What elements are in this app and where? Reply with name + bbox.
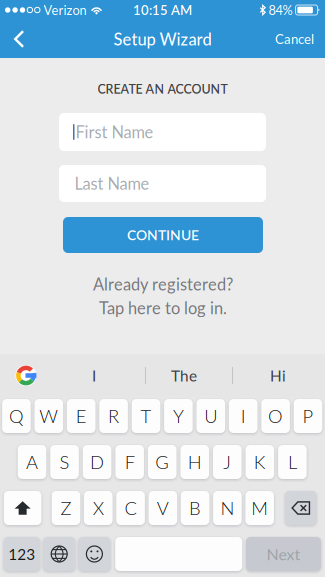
staticText: J: [223, 451, 231, 473]
button[interactable]: Q: [2, 399, 31, 433]
staticText: 10:15 AM: [133, 2, 192, 18]
button[interactable]: M: [245, 491, 274, 525]
button[interactable]: I: [54, 354, 134, 397]
staticText: I: [92, 366, 96, 385]
button[interactable]: W: [34, 399, 63, 433]
button[interactable]: CONTINUE: [63, 217, 263, 253]
button[interactable]: T: [132, 399, 160, 433]
staticText: V: [157, 497, 169, 519]
staticText: The: [171, 366, 197, 385]
staticText: Y: [173, 405, 184, 427]
button[interactable]: V: [148, 491, 177, 525]
button[interactable]: Emoji: [78, 537, 110, 571]
staticText: CONTINUE: [127, 227, 199, 243]
button[interactable]: F: [115, 445, 144, 479]
button[interactable]: S: [50, 445, 79, 479]
button[interactable]: A: [18, 445, 46, 479]
staticText: Hi: [270, 366, 286, 385]
button[interactable]: O: [261, 399, 290, 433]
button[interactable]: H: [180, 445, 209, 479]
button[interactable]: P: [294, 399, 322, 433]
staticText: Verizon: [43, 2, 86, 18]
button[interactable]: Back: [2, 21, 36, 57]
button[interactable]: I: [229, 399, 257, 433]
button[interactable]: N: [213, 491, 242, 525]
button[interactable]: Google: [8, 354, 44, 397]
staticText: H: [188, 451, 202, 473]
button[interactable]: Next: [246, 537, 321, 571]
button[interactable]: Z: [52, 491, 80, 525]
staticText: W: [39, 405, 58, 427]
button[interactable]: C: [116, 491, 145, 525]
button[interactable]: Next keyboard: [43, 537, 75, 571]
staticText: T: [140, 405, 151, 427]
staticText: L: [288, 451, 297, 473]
button[interactable]: K: [246, 445, 274, 479]
button[interactable]: G: [148, 445, 176, 479]
staticText: O: [268, 405, 283, 427]
staticText: U: [204, 405, 217, 427]
staticText: M: [251, 497, 268, 519]
staticText: Already registered?: [93, 274, 233, 294]
staticText: G: [155, 451, 169, 473]
staticText: D: [90, 451, 104, 473]
staticText: I: [241, 405, 246, 427]
button[interactable]: D: [83, 445, 111, 479]
staticText: Z: [60, 497, 71, 519]
staticText: Next: [266, 544, 300, 564]
staticText: K: [254, 451, 266, 473]
staticText: F: [125, 451, 135, 473]
staticText: 123: [8, 545, 35, 563]
button[interactable]: U: [196, 399, 225, 433]
staticText: R: [108, 405, 119, 427]
staticText: S: [59, 451, 69, 473]
button[interactable]: Shift: [4, 491, 41, 525]
button[interactable]: Hi: [238, 354, 318, 397]
staticText: Tap here to log in.: [99, 298, 227, 318]
button[interactable]: J: [213, 445, 242, 479]
button[interactable]: X: [84, 491, 113, 525]
staticText: E: [76, 405, 87, 427]
staticText: P: [302, 405, 313, 427]
staticText: C: [125, 497, 137, 519]
staticText: First Name: [75, 122, 153, 142]
button[interactable]: Delete: [285, 491, 316, 525]
staticText: A: [26, 451, 38, 473]
button[interactable]: E: [67, 399, 95, 433]
staticText: Cancel: [275, 31, 314, 47]
button[interactable]: Already registered?: [63, 276, 263, 316]
staticText: Setup Wizard: [113, 29, 211, 49]
button[interactable]: The: [144, 354, 224, 397]
staticText: Q: [9, 405, 24, 427]
button[interactable]: L: [278, 445, 307, 479]
staticText: X: [93, 497, 104, 519]
staticText: N: [220, 497, 234, 519]
button[interactable]: R: [99, 399, 128, 433]
button[interactable]: B: [181, 491, 209, 525]
staticText: CREATE AN ACCOUNT: [97, 82, 227, 96]
button[interactable]: Y: [164, 399, 193, 433]
staticText: B: [189, 497, 201, 519]
staticText: Last Name: [74, 174, 149, 193]
button[interactable]: 123: [4, 537, 40, 571]
button[interactable]: Cancel: [266, 21, 323, 57]
staticText: 84%: [268, 2, 292, 18]
